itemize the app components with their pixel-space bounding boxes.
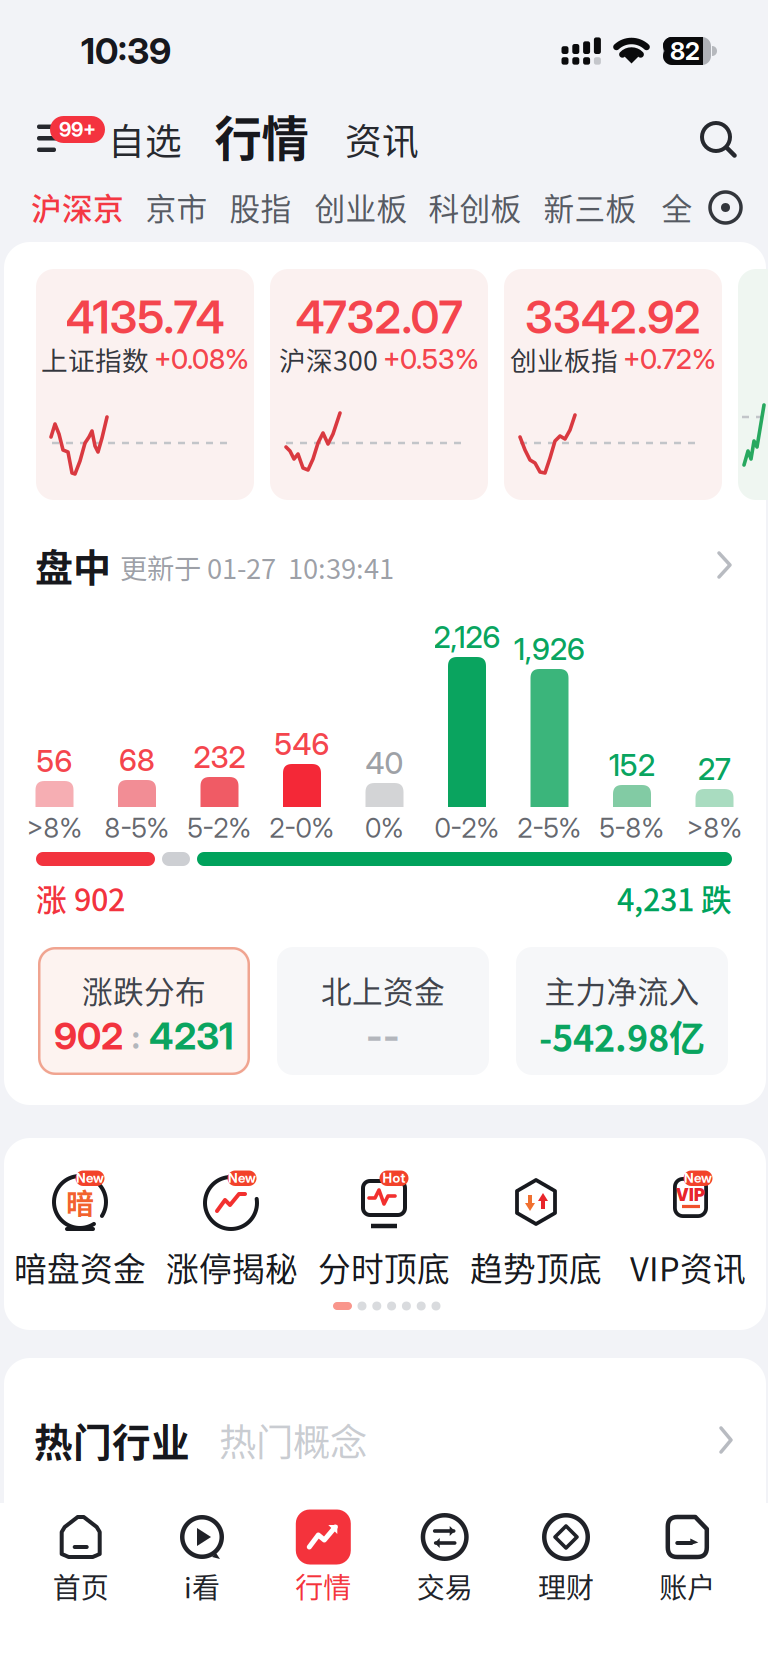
button[interactable]: 主力净流入 <box>516 947 728 1075</box>
staticText: 资讯 <box>345 112 419 166</box>
staticText: 趋势顶底 <box>470 1243 602 1291</box>
staticText: 8-5% <box>104 812 169 844</box>
button[interactable]: New <box>172 1158 312 1298</box>
staticText: 暗 <box>66 1182 94 1222</box>
staticText: New <box>228 1170 256 1186</box>
staticText: 主力净流入 <box>544 968 699 1012</box>
staticText: 82 <box>670 36 700 66</box>
staticText: 沪深300 <box>279 340 378 378</box>
button[interactable]: 行情 <box>0 0 124 66</box>
staticText: VIP资讯 <box>630 1243 746 1291</box>
button[interactable]: 暗 <box>20 1158 160 1298</box>
button[interactable]: 科创板 <box>0 0 110 44</box>
button[interactable]: 自选 <box>0 0 100 60</box>
staticText: 232 <box>193 739 245 775</box>
button[interactable]: 4732.07 <box>270 269 488 500</box>
staticText: 0% <box>365 812 404 844</box>
staticText: 27 <box>698 751 731 787</box>
button[interactable]: 理财 <box>511 1504 621 1608</box>
button[interactable]: 涨跌分布 <box>38 947 250 1075</box>
staticText: 涨 902 <box>36 876 125 920</box>
staticText: 546 <box>274 726 329 762</box>
staticText: 京市 <box>145 185 207 229</box>
staticText: i看 <box>184 1566 220 1606</box>
staticText: 行情 <box>295 1566 351 1606</box>
button[interactable]: VIP <box>628 1158 768 1298</box>
button[interactable] <box>738 269 768 500</box>
staticText: 股指 <box>229 185 291 229</box>
button[interactable]: 交易 <box>390 1504 500 1608</box>
staticText: New <box>76 1170 104 1186</box>
staticText: 沪深京 <box>31 185 124 229</box>
staticText: 理财 <box>538 1566 594 1606</box>
staticText: Hot <box>382 1170 405 1186</box>
staticText: 4135.74 <box>65 290 224 344</box>
staticText: 56 <box>36 743 72 779</box>
staticText: 0-2% <box>434 812 499 844</box>
staticText: 交易 <box>417 1566 473 1606</box>
staticText: 3342.92 <box>525 290 701 344</box>
button[interactable]: 3342.92 <box>504 269 722 500</box>
staticText: 热门行业 <box>34 1412 190 1468</box>
staticText: 2-0% <box>269 812 334 844</box>
staticText: -- <box>366 1013 400 1059</box>
staticText: 全 <box>661 185 692 229</box>
staticText: 上证指数 <box>41 340 149 378</box>
staticText: 盘中 <box>35 537 111 592</box>
staticText: +0.08% <box>154 342 249 376</box>
staticText: >8% <box>26 812 82 844</box>
staticText: 自选 <box>108 112 182 166</box>
button[interactable]: 沪深京 <box>0 0 110 44</box>
staticText: 5-8% <box>599 812 664 844</box>
staticText: 10:39 <box>81 29 171 73</box>
button[interactable]: 热门行业 <box>0 0 180 50</box>
staticText: 行情 <box>214 101 308 170</box>
staticText: New <box>684 1170 712 1186</box>
button[interactable]: Hot <box>324 1158 464 1298</box>
staticText: 科创板 <box>428 185 521 229</box>
button[interactable]: 北上资金 <box>277 947 489 1075</box>
staticText: 暗盘资金 <box>14 1243 146 1291</box>
staticText: 创业板指 <box>510 340 618 378</box>
staticText: >8% <box>686 812 742 844</box>
staticText: 99+ <box>59 117 96 142</box>
staticText: +0.72% <box>623 342 716 376</box>
staticText: 152 <box>609 747 655 783</box>
button[interactable]: 热门概念 <box>0 0 170 50</box>
staticText: 4,231 跌 <box>617 876 732 920</box>
staticText: 分时顶底 <box>318 1243 450 1291</box>
staticText: +0.53% <box>383 342 479 376</box>
staticText: 40 <box>365 745 403 781</box>
staticText: 1,926 <box>514 631 585 667</box>
button[interactable]: i看 <box>147 1504 257 1608</box>
button[interactable]: 行情 <box>268 1504 378 1608</box>
staticText: -542.98亿 <box>539 1010 705 1062</box>
staticText: : <box>131 1015 141 1057</box>
button[interactable]: 趋势顶底 <box>476 1158 616 1298</box>
button[interactable]: 4135.74 <box>36 269 254 500</box>
staticText: 902 <box>54 1013 123 1059</box>
button[interactable]: 首页 <box>26 1504 136 1608</box>
staticText: 首页 <box>53 1566 109 1606</box>
button[interactable]: 盘中 <box>14 535 754 595</box>
staticText: 2-5% <box>517 812 581 844</box>
button[interactable]: 资讯 <box>0 0 100 60</box>
button[interactable]: 股指 <box>0 0 90 44</box>
button[interactable]: 京市 <box>0 0 90 44</box>
staticText: 2,126 <box>433 619 500 655</box>
button[interactable]: 新三板 <box>0 0 110 44</box>
staticText: 热门概念 <box>219 1413 367 1467</box>
staticText: 涨跌分布 <box>82 968 206 1012</box>
staticText: 68 <box>119 742 155 778</box>
staticText: 新三板 <box>543 185 636 229</box>
staticText: 4732.07 <box>295 290 462 344</box>
staticText: 5-2% <box>187 812 251 844</box>
button[interactable]: 创业板 <box>0 0 110 44</box>
staticText: 4231 <box>149 1013 234 1059</box>
button[interactable]: Menu <box>0 0 110 70</box>
button[interactable]: 账户 <box>632 1504 742 1608</box>
staticText: 更新于 01-27 10:39:41 <box>120 547 394 587</box>
